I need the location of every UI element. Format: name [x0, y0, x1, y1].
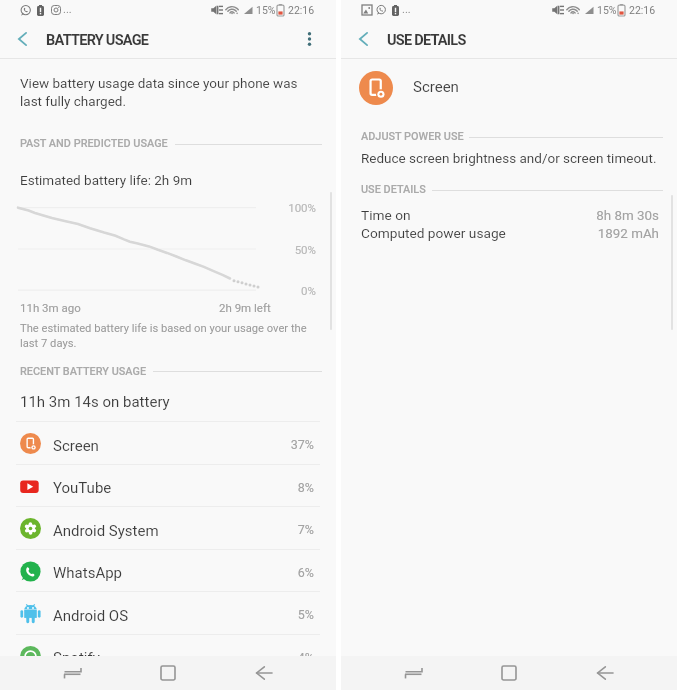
button[interactable]: Back	[244, 656, 284, 690]
staticText: 8h 8m 30s	[539, 208, 659, 224]
staticText: Android System	[53, 522, 159, 540]
staticText: 6%	[194, 565, 314, 580]
button[interactable]	[0, 464, 336, 507]
staticText: RECENT BATTERY USAGE	[20, 365, 147, 378]
staticText: USE DETAILS	[387, 32, 466, 49]
staticText: 15%	[597, 4, 617, 16]
staticText: last 7 days.	[20, 337, 77, 350]
staticText: 11h 3m ago	[20, 301, 81, 314]
staticText: WhatsApp	[53, 564, 123, 582]
staticText: 37%	[194, 437, 314, 452]
staticText: YouTube	[53, 479, 112, 497]
staticText: USE DETAILS	[361, 183, 426, 196]
staticText: 2h 9m left	[219, 301, 271, 314]
staticText: 1892 mAh	[539, 226, 659, 242]
staticText: Android OS	[53, 607, 129, 625]
staticText: last fully charged.	[20, 93, 127, 109]
button[interactable]: Home	[489, 656, 529, 690]
staticText: BATTERY USAGE	[46, 32, 149, 49]
staticText: View battery usage data since your phone…	[20, 75, 298, 91]
button[interactable]	[0, 591, 336, 634]
button[interactable]: More options	[293, 22, 327, 56]
button[interactable]	[20, 646, 41, 667]
button[interactable]: Back	[585, 656, 625, 690]
staticText: 8%	[194, 480, 314, 495]
staticText: ...	[402, 3, 411, 16]
staticText: 100%	[196, 201, 316, 214]
button[interactable]: Recent apps	[393, 656, 433, 690]
button[interactable]: Recent apps	[52, 656, 92, 690]
staticText: Estimated battery life: 2h 9m	[20, 172, 193, 188]
button[interactable]: Navigate up	[5, 22, 39, 56]
button[interactable]	[0, 421, 336, 464]
button[interactable]: Home	[148, 656, 188, 690]
staticText: Time on	[361, 207, 411, 223]
button[interactable]	[0, 549, 336, 592]
staticText: 15%	[256, 4, 276, 16]
staticText: 22:16	[629, 4, 656, 16]
staticText: 22:16	[288, 4, 315, 16]
staticText: ...	[63, 3, 72, 16]
staticText: 11h 3m 14s on battery	[20, 393, 170, 411]
staticText: 7%	[194, 522, 314, 537]
staticText: ADJUST POWER USE	[361, 130, 464, 143]
button[interactable]: Navigate up	[346, 22, 380, 56]
staticText: 50%	[196, 243, 316, 256]
staticText: 0%	[196, 284, 316, 297]
staticText: 5%	[194, 607, 314, 622]
staticText: PAST AND PREDICTED USAGE	[20, 137, 168, 150]
staticText: Screen	[413, 78, 459, 96]
button[interactable]	[0, 506, 336, 549]
staticText: Reduce screen brightness and/or screen t…	[361, 150, 657, 166]
staticText: 4%	[194, 650, 314, 665]
staticText: Computed power usage	[361, 225, 506, 241]
staticText: The estimated battery life is based on y…	[20, 322, 307, 335]
staticText: Screen	[53, 437, 99, 455]
staticText: Spotify	[53, 649, 100, 667]
